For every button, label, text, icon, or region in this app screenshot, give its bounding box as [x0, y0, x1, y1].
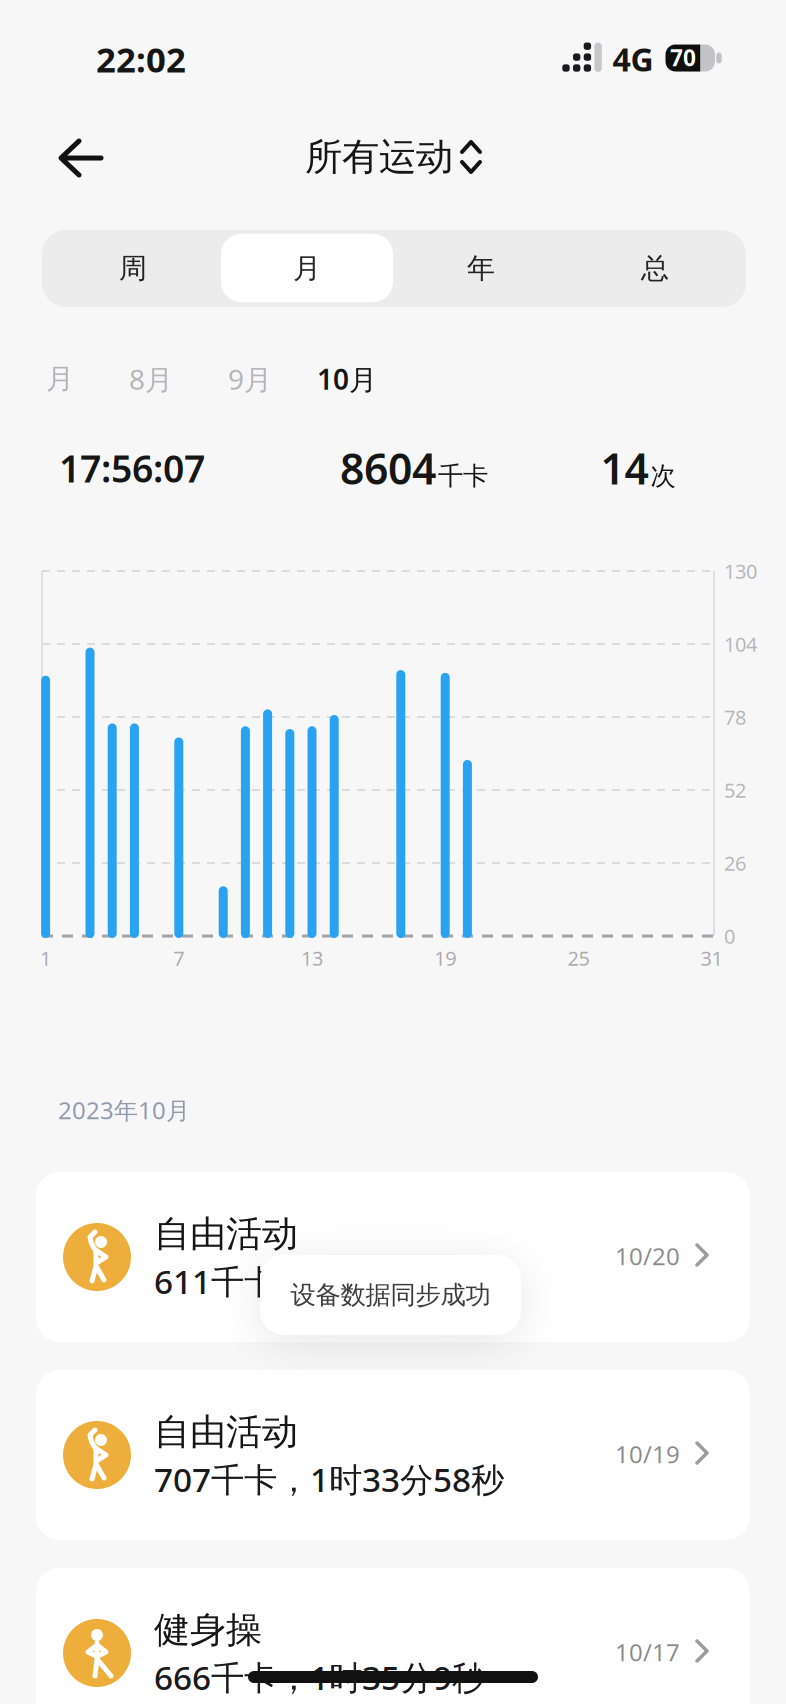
staticText: 4G [612, 38, 653, 80]
staticText: 52 [724, 777, 746, 803]
staticText: 70 [670, 42, 696, 72]
staticText: 年 [467, 251, 495, 286]
staticText: 10/20 [615, 1240, 680, 1272]
staticText: 13 [301, 945, 323, 971]
staticText: 总 [641, 251, 669, 286]
staticText: 千卡 [438, 461, 488, 492]
staticText: 设备数据同步成功 [290, 1279, 490, 1310]
staticText: 707千卡，1时33分58秒 [154, 1457, 504, 1501]
staticText: 10/17 [615, 1636, 680, 1668]
staticText: 130 [724, 558, 757, 584]
staticText: 25 [567, 945, 589, 971]
button[interactable]: 9月 [228, 360, 272, 398]
staticText: 所有运动 [305, 134, 453, 180]
button[interactable]: 总 [568, 230, 742, 307]
staticText: 次 [650, 461, 675, 492]
staticText: 月 [293, 251, 321, 286]
staticText: 14 [600, 440, 648, 496]
staticText: 自由活动 [154, 1410, 298, 1454]
button[interactable]: 所有运动 [305, 134, 481, 180]
button[interactable]: 周 [46, 230, 220, 307]
button[interactable]: 健身操 [36, 1568, 750, 1704]
button[interactable]: Back [58, 138, 104, 178]
staticText: 10/19 [615, 1438, 680, 1470]
staticText: 周 [119, 251, 147, 286]
button[interactable]: 月 [46, 362, 74, 396]
staticText: 8月 [129, 360, 173, 398]
staticText: 0 [724, 923, 735, 949]
staticText: 17:56:07 [59, 443, 205, 493]
staticText: 19 [434, 945, 456, 971]
staticText: 自由活动 [154, 1212, 298, 1256]
button[interactable]: 自由活动 [36, 1172, 750, 1342]
staticText: 8604 [340, 440, 436, 496]
staticText: 7 [173, 945, 184, 971]
button[interactable]: 自由活动 [36, 1370, 750, 1540]
staticText: 611千卡 [154, 1259, 277, 1303]
staticText: 9月 [228, 360, 272, 398]
staticText: 31 [701, 945, 723, 971]
button[interactable]: 8月 [129, 360, 173, 398]
staticText: 26 [724, 850, 746, 876]
button[interactable]: 年 [394, 230, 568, 307]
staticText: 2023年10月 [58, 1094, 190, 1126]
staticText: 666千卡，1时35分9秒 [154, 1655, 485, 1699]
staticText: 22:02 [96, 36, 186, 82]
button[interactable]: 月 [220, 230, 394, 307]
staticText: 健身操 [154, 1608, 262, 1652]
staticText: 月 [46, 362, 74, 396]
button[interactable]: 10月 [317, 360, 377, 398]
staticText: 78 [724, 704, 746, 730]
staticText: 1 [40, 945, 51, 971]
staticText: 104 [724, 631, 757, 657]
staticText: 10月 [317, 360, 377, 398]
